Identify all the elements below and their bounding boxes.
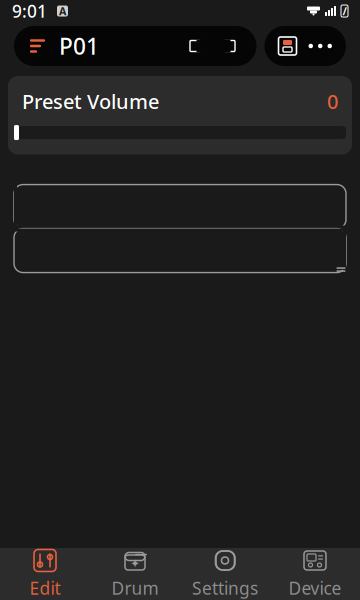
- staticText: 0: [327, 88, 338, 115]
- button[interactable]: P01: [14, 26, 256, 66]
- staticText: 9:01: [12, 0, 47, 22]
- staticText: Drum: [111, 576, 158, 599]
- staticText: Device: [288, 576, 341, 599]
- staticText: P01: [59, 31, 99, 61]
- staticText: Edit: [29, 576, 60, 599]
- button[interactable]: Save and more options: [264, 26, 346, 66]
- staticText: ✦: [130, 557, 140, 570]
- button[interactable]: Preset volume slider: [14, 123, 346, 143]
- button[interactable]: Edit: [0, 548, 90, 600]
- staticText: Preset Volume: [22, 88, 159, 115]
- staticText: A: [59, 4, 66, 18]
- staticText: /: [342, 4, 346, 18]
- staticText: Settings: [192, 576, 258, 599]
- button[interactable]: Device: [270, 548, 360, 600]
- button[interactable]: Settings: [180, 548, 270, 600]
- button[interactable]: ✦: [90, 548, 180, 600]
